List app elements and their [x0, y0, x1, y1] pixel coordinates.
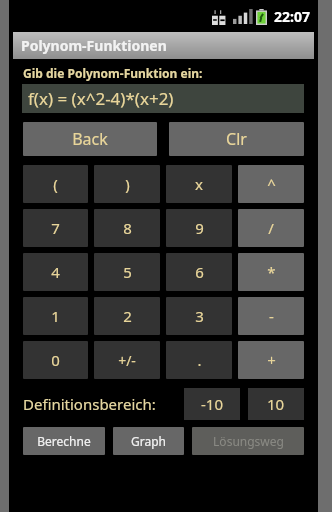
staticText: 5 [123, 262, 132, 282]
staticText: 3 [195, 306, 204, 326]
staticText: Gib die Polynom-Funktion ein: [23, 65, 203, 81]
button[interactable]: Lösungsweg [192, 427, 304, 455]
button[interactable]: . [166, 341, 232, 379]
button[interactable]: 4 [23, 253, 88, 291]
staticText: Back [72, 128, 108, 150]
staticText: 6 [195, 262, 204, 282]
button[interactable]: 2 [94, 297, 160, 335]
button[interactable]: 9 [166, 209, 232, 247]
staticText: 9 [195, 218, 204, 238]
staticText: Berechne [37, 433, 91, 449]
button[interactable]: * [238, 253, 304, 291]
staticText: 7 [51, 218, 60, 238]
button[interactable]: 1 [23, 297, 88, 335]
button[interactable]: Berechne [23, 427, 105, 455]
button[interactable]: ^ [238, 165, 304, 203]
staticText: 22:07 [274, 7, 310, 26]
button[interactable]: 7 [23, 209, 88, 247]
staticText: Definitionsbereich: [23, 394, 184, 414]
button[interactable]: 8 [94, 209, 160, 247]
staticText: f(x) = (x^2-4)*(x+2) [28, 87, 174, 110]
button[interactable]: 10 [248, 388, 304, 420]
staticText: Graph [131, 433, 166, 449]
staticText: / [268, 218, 274, 238]
staticText: Lösungsweg [213, 433, 284, 449]
button[interactable]: +/- [94, 341, 160, 379]
button[interactable]: - [238, 297, 304, 335]
staticText: 4 [51, 262, 60, 282]
button[interactable]: Back [23, 122, 157, 156]
button[interactable]: f(x) = (x^2-4)*(x+2) [22, 84, 304, 113]
button[interactable]: ( [23, 165, 88, 203]
button[interactable]: Clr [169, 122, 304, 156]
button[interactable]: / [238, 209, 304, 247]
staticText: ) [125, 174, 130, 194]
button[interactable]: -10 [184, 388, 240, 420]
staticText: 8 [123, 218, 132, 238]
button[interactable]: Graph [113, 427, 184, 455]
button[interactable]: 3 [166, 297, 232, 335]
button[interactable]: + [238, 341, 304, 379]
staticText: ^ [267, 174, 276, 194]
staticText: * [267, 262, 276, 282]
button[interactable]: x [166, 165, 232, 203]
staticText: -10 [201, 394, 223, 414]
staticText: Clr [226, 128, 247, 150]
button[interactable]: 0 [23, 341, 88, 379]
staticText: 10 [267, 394, 285, 414]
staticText: 0 [51, 350, 60, 370]
staticText: Polynom-Funktionen [21, 36, 167, 55]
button[interactable]: ) [94, 165, 160, 203]
staticText: 2 [123, 306, 132, 326]
staticText: . [197, 350, 202, 370]
staticText: x [195, 174, 203, 194]
staticText: - [269, 306, 274, 326]
staticText: + [267, 350, 276, 370]
staticText: 1 [51, 306, 60, 326]
staticText: +/- [118, 351, 136, 370]
button[interactable]: 6 [166, 253, 232, 291]
button[interactable]: 5 [94, 253, 160, 291]
staticText: ( [53, 174, 58, 194]
